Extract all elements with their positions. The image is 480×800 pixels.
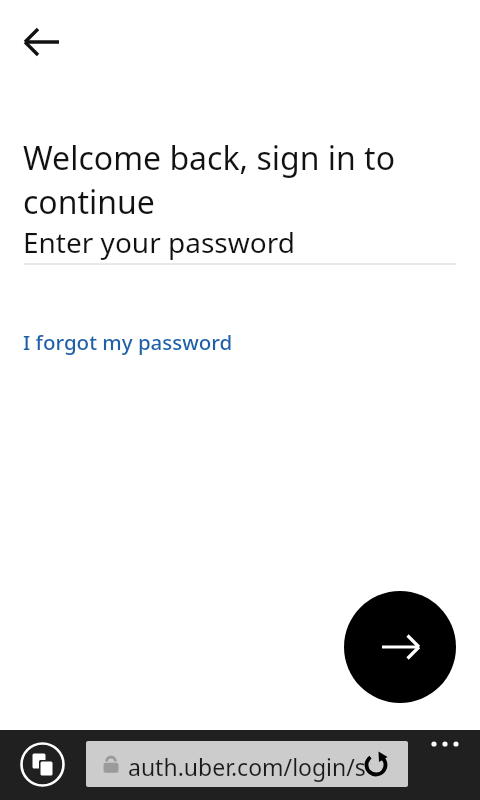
button[interactable]: I forgot my password <box>16 322 240 362</box>
staticText: Enter your password <box>23 223 295 261</box>
staticText: Welcome back, sign in to continue <box>23 136 480 224</box>
staticText: auth.uber.com/login/s <box>128 751 366 782</box>
button[interactable]: Tabs <box>20 742 65 787</box>
staticText: I forgot my password <box>23 328 233 356</box>
button[interactable]: More options <box>420 730 472 782</box>
button[interactable]: Reload <box>360 749 392 781</box>
button[interactable]: auth.uber.com/login/s <box>86 741 408 787</box>
button[interactable]: Back <box>12 16 64 68</box>
button[interactable]: Enter your password <box>0 212 480 266</box>
button[interactable]: Next <box>344 591 456 703</box>
